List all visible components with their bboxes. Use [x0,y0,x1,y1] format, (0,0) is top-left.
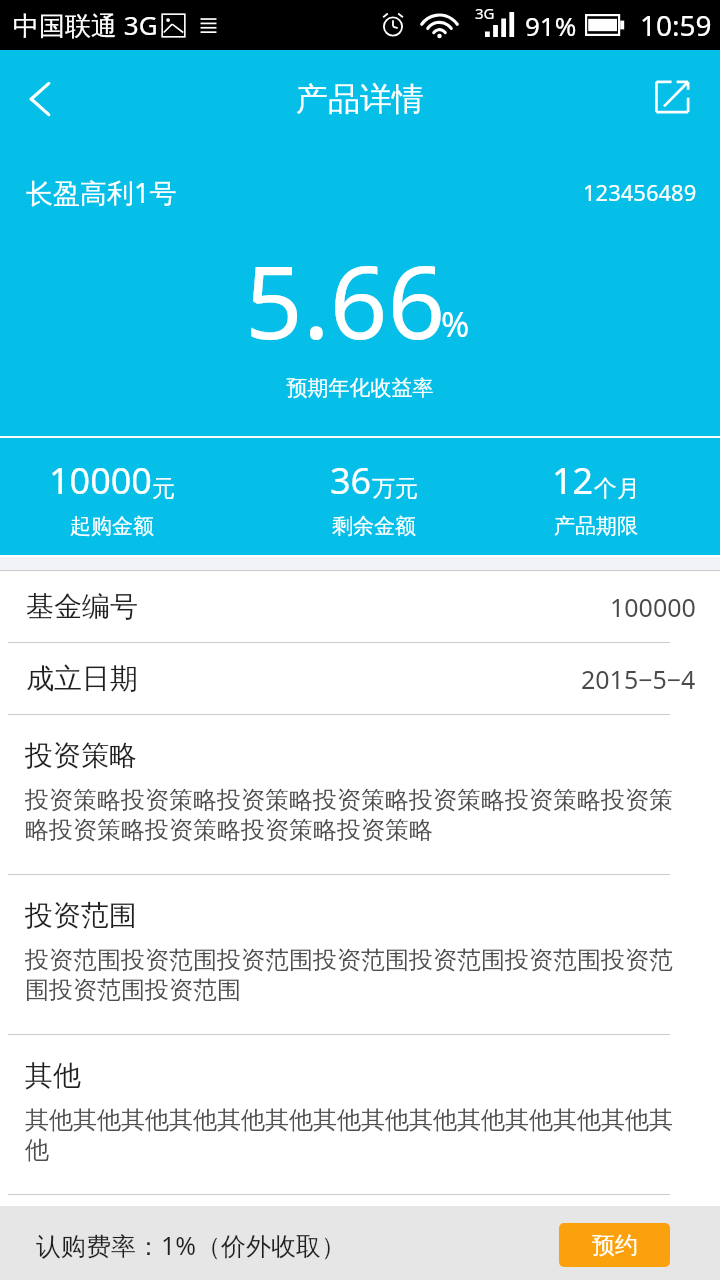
button[interactable]: Back [0,50,78,140]
staticText: 投资策略投资策略投资策略投资策略投资策略投资策略投资策略投资策略投资策略投资策略… [25,785,693,846]
staticText: 123456489 [583,177,697,207]
button[interactable]: 成立日期 [0,643,720,714]
staticText: 91% [525,8,577,43]
button[interactable]: Share [642,50,720,140]
staticText: 投资范围 [25,898,137,933]
staticText: 起购金额 [70,513,154,539]
staticText: 其他 [25,1058,81,1093]
staticText: 基金编号 [26,589,138,624]
staticText: 100000 [610,590,696,624]
staticText: 产品期限 [554,513,638,539]
staticText: 预期年化收益率 [0,375,720,401]
staticText: 认购费率：1%（价外收取） [36,1228,347,1262]
staticText: 中国联通 3G [13,7,158,43]
staticText: 12 [552,456,594,505]
staticText: 个月 [594,474,640,503]
staticText: % [441,301,470,347]
staticText: 剩余金额 [332,513,416,539]
staticText: 3G [475,3,495,23]
staticText: 2015−5−4 [581,662,696,696]
staticText: 万元 [372,474,418,503]
staticText: 投资策略 [25,738,137,773]
staticText: 成立日期 [26,661,138,696]
staticText: 36 [330,456,372,505]
staticText: 10:59 [640,6,712,44]
staticText: 5.66 [245,231,446,369]
staticText: 元 [152,474,175,503]
staticText: 10000 [49,456,152,505]
staticText: 产品详情 [296,79,424,119]
staticText: 预约 [592,1231,638,1260]
button[interactable]: 基金编号 [0,571,720,642]
staticText: 其他其他其他其他其他其他其他其他其他其他其他其他其他其他 [25,1105,693,1166]
staticText: 长盈高利1号 [26,174,177,211]
staticText: 投资范围投资范围投资范围投资范围投资范围投资范围投资范围投资范围投资范围 [25,945,693,1006]
button[interactable]: 预约 [559,1223,670,1267]
